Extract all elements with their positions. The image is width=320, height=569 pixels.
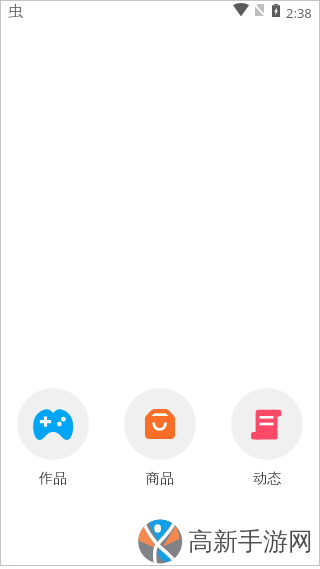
staticText: 2:38 bbox=[286, 4, 312, 22]
staticText: 虫 bbox=[8, 2, 23, 21]
staticText: 动态 bbox=[253, 470, 281, 488]
staticText: 商品 bbox=[146, 470, 174, 488]
button[interactable]: 作品 bbox=[17, 388, 89, 488]
staticText: 高新手游网 bbox=[188, 526, 313, 557]
staticText: 作品 bbox=[39, 470, 67, 488]
button[interactable]: 动态 bbox=[231, 388, 303, 488]
button[interactable]: 商品 bbox=[124, 388, 196, 488]
